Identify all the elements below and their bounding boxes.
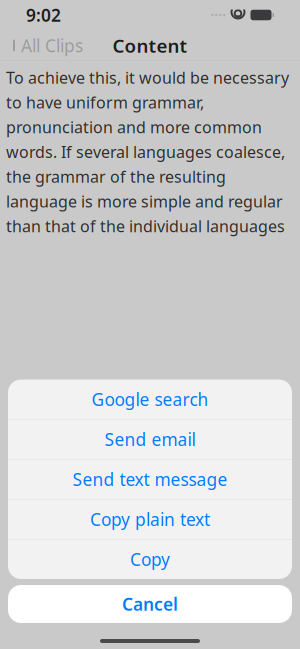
button[interactable]: Send email: [8, 419, 292, 459]
staticText: Send text message: [72, 468, 227, 491]
button[interactable]: Copy: [8, 539, 292, 579]
button[interactable]: All Clips: [4, 29, 89, 62]
button[interactable]: Cancel: [8, 585, 292, 623]
button[interactable]: Copy plain text: [8, 499, 292, 539]
staticText: 9:02: [26, 3, 61, 26]
staticText: Copy: [130, 548, 170, 571]
staticText: To achieve this, it would be necessary t…: [6, 67, 289, 237]
staticText: Google search: [91, 388, 208, 411]
staticText: Copy plain text: [90, 508, 210, 531]
button[interactable]: Google search: [8, 379, 292, 419]
staticText: Cancel: [122, 592, 178, 615]
staticText: Send email: [104, 428, 195, 451]
staticText: Content: [112, 33, 187, 58]
staticText: All Clips: [21, 34, 83, 57]
button[interactable]: Send text message: [8, 459, 292, 499]
